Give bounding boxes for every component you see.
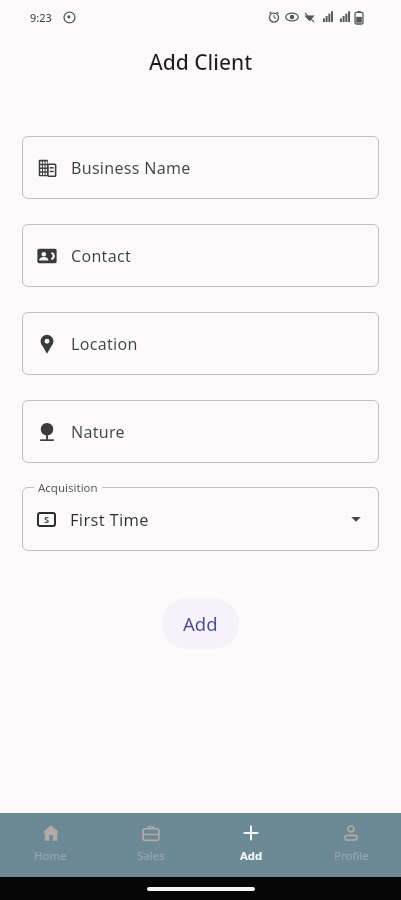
button[interactable]: Location [22, 312, 379, 375]
staticText: 9:23 [30, 10, 52, 25]
button[interactable]: Nature [22, 400, 379, 463]
staticText: First Time [70, 508, 149, 530]
button[interactable]: Sales [101, 813, 201, 877]
button[interactable]: Add [201, 813, 301, 877]
staticText: Location [71, 333, 138, 355]
staticText: Home [34, 848, 67, 864]
button[interactable]: Home [0, 813, 101, 877]
staticText: Business Name [71, 157, 191, 179]
staticText: S [44, 513, 50, 526]
staticText: Profile [334, 848, 369, 864]
staticText: Acquisition [38, 480, 98, 496]
button[interactable]: S [22, 487, 379, 551]
button[interactable]: Business Name [22, 136, 379, 199]
staticText: Nature [71, 421, 125, 443]
staticText: Contact [71, 245, 131, 267]
staticText: Add [183, 611, 218, 636]
staticText: Sales [137, 848, 165, 864]
staticText: Add Client [149, 48, 253, 77]
staticText: Add [240, 848, 263, 864]
button[interactable]: Profile [301, 813, 401, 877]
button[interactable]: Contact [22, 224, 379, 287]
button[interactable]: Add [162, 598, 239, 649]
